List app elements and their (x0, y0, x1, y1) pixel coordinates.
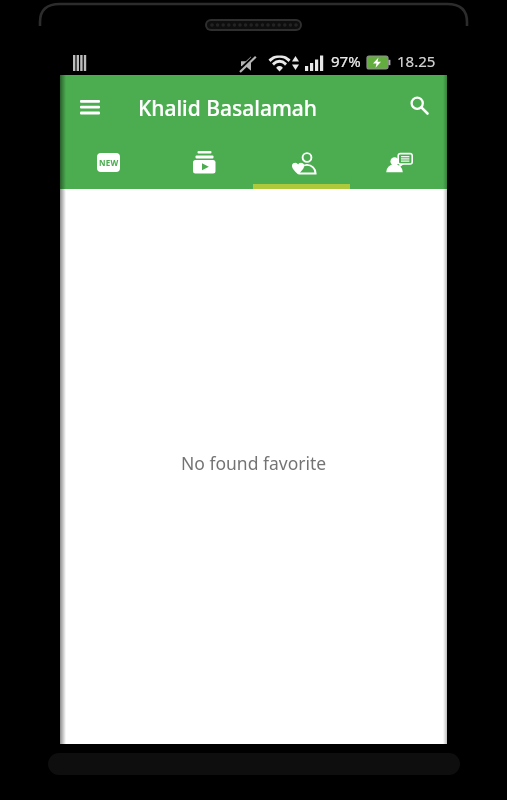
button[interactable] (350, 143, 447, 184)
button[interactable] (253, 143, 350, 184)
staticText: 97% (331, 51, 361, 71)
staticText: 18.25 (397, 51, 436, 71)
button[interactable] (397, 83, 443, 129)
staticText: No found favorite (181, 451, 327, 475)
button[interactable]: NEW (60, 143, 156, 184)
button[interactable] (68, 85, 112, 129)
button[interactable] (156, 143, 253, 184)
staticText: NEW (99, 157, 119, 168)
staticText: Khalid Basalamah (138, 94, 317, 123)
